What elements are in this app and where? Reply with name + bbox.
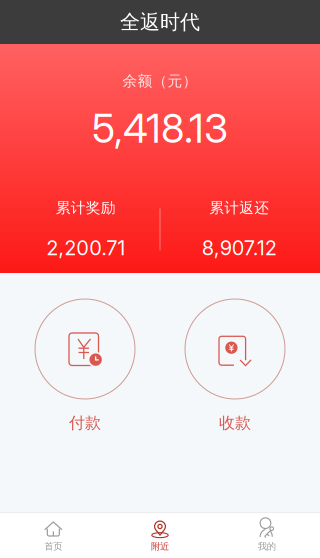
staticText: 累计奖励 xyxy=(56,199,116,217)
button[interactable]: 首页 xyxy=(0,513,107,558)
button[interactable]: 我的 xyxy=(213,513,320,558)
staticText: 余额（元） xyxy=(122,72,197,90)
staticText: 5,418.13 xyxy=(92,104,228,152)
button[interactable]: 附近 xyxy=(107,513,213,558)
staticText: 2,200.71 xyxy=(46,236,125,260)
staticText: 首页 xyxy=(44,541,62,552)
staticText: 累计返还 xyxy=(209,199,269,217)
button[interactable]: 收款 xyxy=(160,299,310,433)
staticText: 我的 xyxy=(258,541,276,552)
button[interactable]: 付款 xyxy=(10,299,160,433)
staticText: 全返时代 xyxy=(120,10,200,34)
staticText: 8,907.12 xyxy=(202,236,277,260)
staticText: 收款 xyxy=(219,413,251,433)
staticText: 付款 xyxy=(69,413,101,433)
staticText: 附近 xyxy=(151,541,169,552)
